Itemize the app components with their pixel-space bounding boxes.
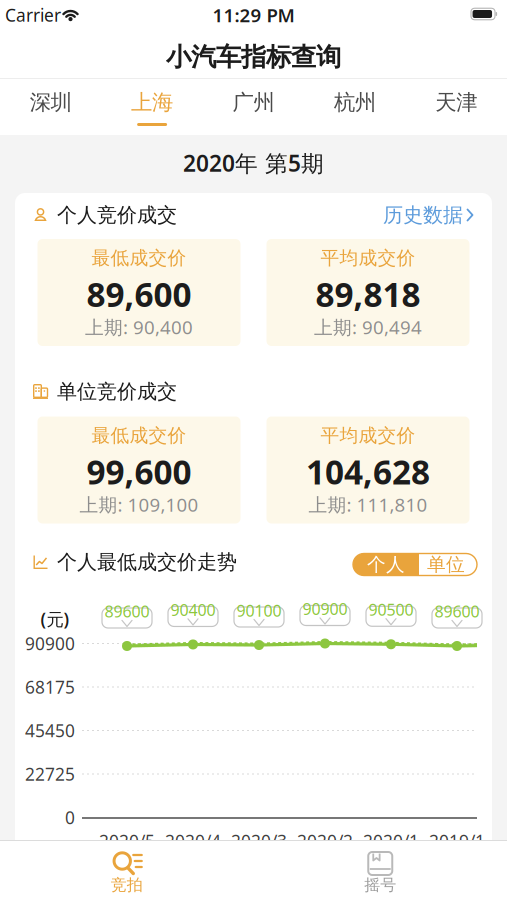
button[interactable]: 个人 xyxy=(355,553,417,575)
staticText: 2020/4 xyxy=(165,829,221,852)
staticText: 2020年 第5期 xyxy=(183,148,324,178)
staticText: 历史数据 xyxy=(383,203,463,227)
staticText: 22725 xyxy=(25,762,75,785)
staticText: 90100 xyxy=(236,600,281,621)
staticText: 个人竞价成交 xyxy=(57,203,177,227)
staticText: 90500 xyxy=(368,599,413,620)
staticText: 2019/1 xyxy=(429,829,485,852)
staticText: 89,600 xyxy=(86,272,191,316)
staticText: 2020/5 xyxy=(99,829,155,852)
staticText: 90900 xyxy=(302,598,347,619)
button[interactable]: 上海 xyxy=(101,79,203,134)
staticText: 深圳 xyxy=(30,89,72,116)
staticText: 2020/1 xyxy=(363,829,419,852)
staticText: 上期: 111,810 xyxy=(308,492,427,517)
button[interactable]: 杭州 xyxy=(304,79,406,134)
staticText: 杭州 xyxy=(334,89,376,116)
staticText: 上海 xyxy=(131,89,173,116)
staticText: 平均成交价 xyxy=(320,246,415,269)
staticText: 90400 xyxy=(170,599,215,620)
staticText: 平均成交价 xyxy=(320,424,415,447)
staticText: 90900 xyxy=(25,632,75,655)
staticText: 个人 xyxy=(367,553,405,576)
staticText: 89,818 xyxy=(315,272,420,316)
staticText: 个人最低成交价走势 xyxy=(57,550,237,574)
button[interactable]: 历史数据 xyxy=(383,203,474,227)
staticText: 2020/3 xyxy=(231,829,287,852)
staticText: 上期: 109,100 xyxy=(79,492,198,517)
staticText: (元) xyxy=(40,607,69,630)
staticText: 竞拍 xyxy=(111,875,143,895)
staticText: 小汽车指标查询 xyxy=(166,41,341,72)
staticText: 2020/2 xyxy=(297,829,353,852)
button[interactable]: 广州 xyxy=(203,79,304,134)
staticText: 最低成交价 xyxy=(91,246,186,269)
staticText: 单位竞价成交 xyxy=(57,379,177,404)
staticText: 0 xyxy=(65,806,75,829)
staticText: 上期: 90,494 xyxy=(314,315,422,339)
staticText: 单位 xyxy=(427,553,465,576)
button[interactable]: 竞拍 xyxy=(67,841,187,899)
button[interactable]: 天津 xyxy=(406,79,507,134)
button[interactable]: 深圳 xyxy=(0,79,101,134)
staticText: 89600 xyxy=(104,601,149,622)
staticText: 最低成交价 xyxy=(91,424,186,447)
staticText: 广州 xyxy=(232,89,274,116)
staticText: 104,628 xyxy=(306,449,430,494)
staticText: 摇号 xyxy=(364,875,396,895)
button[interactable]: 单位 xyxy=(417,553,475,575)
staticText: Carrier xyxy=(5,3,61,26)
staticText: 89600 xyxy=(434,601,479,622)
staticText: 上期: 90,400 xyxy=(85,315,193,339)
staticText: 99,600 xyxy=(86,449,191,494)
staticText: 45450 xyxy=(25,719,75,742)
staticText: 11:29 PM xyxy=(212,3,294,27)
staticText: 天津 xyxy=(435,89,477,116)
button[interactable]: 摇号 xyxy=(320,841,440,899)
staticText: 68175 xyxy=(25,675,75,698)
